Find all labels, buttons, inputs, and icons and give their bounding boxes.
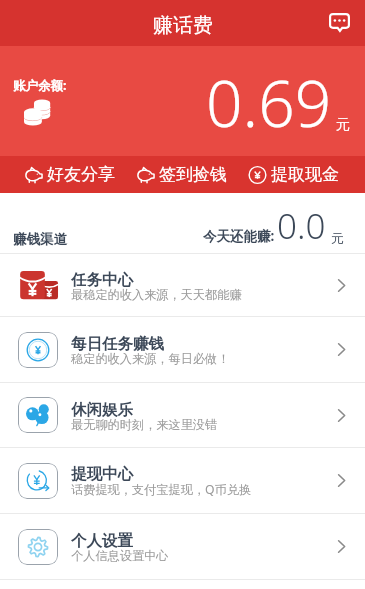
staticText: 赚钱渠道 [13,231,67,248]
button[interactable]: 任务中心 [0,254,365,316]
staticText: 稳定的收入来源，每日必做！ [71,351,230,366]
button[interactable]: 每日任务赚钱 [0,317,365,382]
staticText: 元 [336,116,350,134]
button[interactable]: 提现中心 [0,448,365,513]
staticText: 话费提现，支付宝提现，Q币兑换 [71,481,252,498]
staticText: 最稳定的收入来源，天天都能赚 [71,287,242,302]
staticText: 提取现金 [271,164,339,185]
staticText: 元 [331,230,344,246]
staticText: 提现中心 [71,464,133,484]
staticText: 好友分享 [47,164,115,185]
staticText: 休闲娱乐 [71,400,133,420]
button[interactable]: 个人设置 [0,514,365,579]
staticText: 最无聊的时刻，来这里没错 [71,417,218,432]
staticText: 任务中心 [71,270,133,290]
staticText: 个人信息设置中心 [71,548,169,563]
button[interactable]: 休闲娱乐 [0,383,365,447]
button[interactable]: 提取现金 [237,156,349,193]
button[interactable]: Messages [324,8,354,38]
staticText: 每日任务赚钱 [71,334,164,354]
button[interactable]: 好友分享 [13,156,125,193]
staticText: 个人设置 [71,531,133,551]
staticText: 赚话费 [153,13,213,38]
staticText: 0.69 [206,59,332,146]
button[interactable]: 签到捡钱 [125,156,237,193]
staticText: 账户余额: [13,77,67,94]
staticText: 今天还能赚: [203,227,275,245]
staticText: 签到捡钱 [159,164,227,185]
staticText: 0.0 [277,202,326,250]
